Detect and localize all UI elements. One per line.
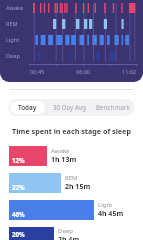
staticText: 2h 4m (58, 235, 80, 240)
staticText: 20% (12, 230, 25, 238)
button[interactable]: 30 Day Avg (47, 99, 91, 116)
staticText: 46% (12, 210, 25, 218)
staticText: Deep (58, 227, 73, 235)
staticText: REM (65, 174, 78, 182)
staticText: Light (98, 201, 113, 209)
staticText: Benchmark (96, 103, 130, 112)
button[interactable]: 22% (9, 173, 139, 193)
staticText: Awake (6, 4, 24, 12)
staticText: 2h 15m (65, 182, 91, 192)
button[interactable]: 12% (9, 146, 139, 166)
button[interactable]: 20% (9, 227, 139, 240)
staticText: Light (6, 36, 20, 44)
staticText: 06:00 (76, 68, 91, 76)
staticText: 30 Day Avg (53, 103, 86, 112)
staticText: 12% (12, 156, 25, 164)
button[interactable]: Benchmark (91, 99, 135, 116)
staticText: Awake (51, 147, 70, 155)
staticText: Today (18, 103, 37, 112)
staticText: REM (6, 20, 18, 28)
button[interactable]: 46% (9, 200, 139, 220)
staticText: Time spent in each stage of sleep (0, 126, 143, 136)
staticText: 00:45 (30, 68, 45, 76)
staticText: 11:02 (122, 68, 137, 76)
staticText: 1h 13m (51, 155, 77, 165)
staticText: Deep (6, 52, 20, 60)
button[interactable]: Today (10, 101, 45, 114)
staticText: 4h 45m (98, 209, 124, 219)
staticText: 22% (12, 183, 25, 191)
